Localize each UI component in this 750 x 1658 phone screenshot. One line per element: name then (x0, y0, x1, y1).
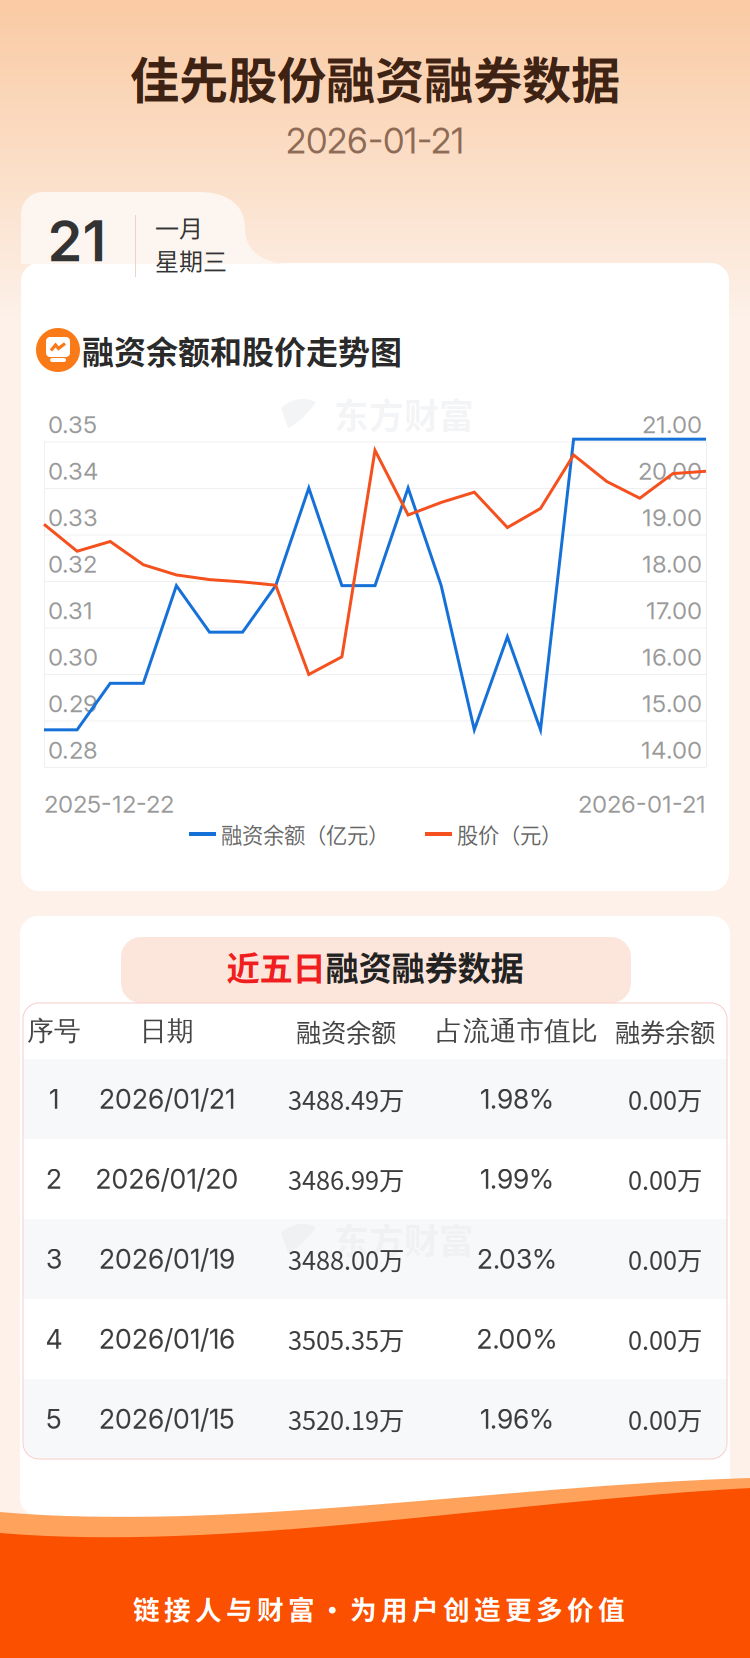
staticText: 1.99% (480, 1163, 554, 1195)
staticText: 0.00万 (628, 1321, 702, 1357)
staticText: 2026/01/15 (99, 1403, 235, 1435)
staticText: 4 (45, 1323, 62, 1355)
staticText: 日期 (140, 1014, 194, 1048)
staticText: 0.00万 (628, 1401, 702, 1437)
staticText: 融资余额（亿元） (221, 819, 389, 849)
staticText: 2026/01/16 (99, 1323, 235, 1355)
staticText: 占流通市值比 (436, 1014, 598, 1048)
staticText: 14.00 (641, 735, 702, 764)
staticText: 融券余额 (615, 1013, 715, 1049)
staticText: 星期三 (155, 243, 227, 277)
button[interactable]: 融资余额（亿元） (189, 816, 389, 852)
staticText: 21 (47, 207, 106, 275)
staticText: 一月 (155, 210, 203, 244)
staticText: 近五日 (226, 942, 325, 990)
staticText: 1.96% (480, 1403, 554, 1435)
staticText: 序号 (27, 1014, 81, 1048)
staticText: 0.32 (48, 549, 97, 578)
staticText: 佳先股份融资融券数据 (130, 41, 620, 113)
staticText: 3488.49万 (288, 1081, 404, 1117)
staticText: 0.34 (48, 456, 98, 485)
staticText: 3488.00万 (288, 1241, 404, 1277)
staticText: 链接人与财富·为用户创造更多价值 (133, 1589, 625, 1627)
staticText: 融资融券数据 (325, 942, 523, 990)
staticText: 17.00 (646, 596, 702, 625)
button[interactable]: 融资余额和股价走势图 (34, 326, 414, 374)
staticText: 1 (49, 1083, 59, 1115)
staticText: 21.00 (642, 410, 702, 439)
staticText: 16.00 (642, 642, 702, 671)
staticText: 2026-01-21 (286, 120, 464, 162)
staticText: 0.29 (48, 689, 98, 718)
staticText: 0.35 (48, 410, 97, 439)
staticText: 15.00 (642, 689, 702, 718)
staticText: 0.28 (48, 735, 98, 764)
staticText: 3505.35万 (288, 1321, 404, 1357)
staticText: 0.31 (48, 596, 93, 625)
button[interactable]: 股价（元） (425, 816, 561, 852)
staticText: 融资余额 (296, 1013, 396, 1049)
staticText: 2026/01/21 (99, 1083, 235, 1115)
staticText: 融资余额和股价走势图 (82, 327, 402, 373)
staticText: 2.00% (476, 1323, 557, 1355)
staticText: 3520.19万 (288, 1401, 404, 1437)
staticText: 股价（元） (457, 819, 562, 849)
staticText: 2026-01-21 (578, 789, 706, 818)
staticText: 东方财富 (334, 389, 474, 439)
staticText: 3 (46, 1243, 62, 1275)
staticText: 2025-12-22 (44, 789, 174, 818)
staticText: 0.30 (48, 642, 98, 671)
staticText: 0.00万 (628, 1081, 702, 1117)
staticText: 3486.99万 (288, 1161, 404, 1197)
staticText: 0.00万 (628, 1241, 702, 1277)
staticText: 0.33 (48, 503, 98, 532)
staticText: 0.00万 (628, 1161, 702, 1197)
staticText: 1.98% (480, 1083, 554, 1115)
staticText: 2 (46, 1163, 62, 1195)
staticText: 东方财富 (334, 1214, 474, 1264)
staticText: 20.00 (638, 456, 702, 485)
staticText: 5 (46, 1403, 62, 1435)
staticText: 19.00 (642, 503, 702, 532)
staticText: 18.00 (642, 549, 702, 578)
staticText: 2026/01/19 (99, 1243, 235, 1275)
staticText: 2026/01/20 (95, 1163, 238, 1195)
staticText: 2.03% (477, 1243, 557, 1275)
